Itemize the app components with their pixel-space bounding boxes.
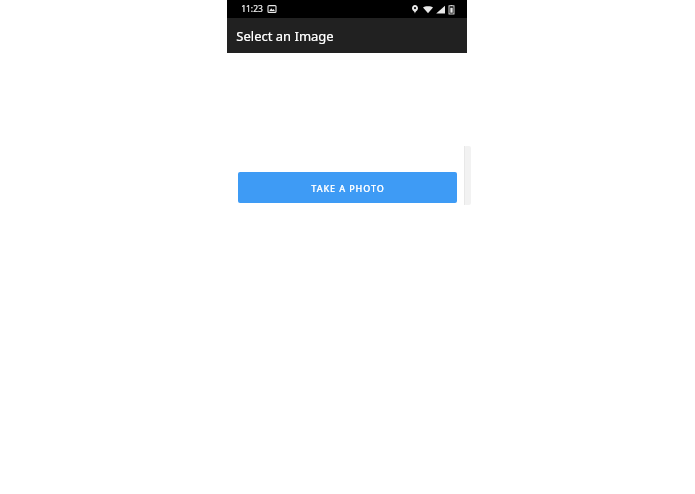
button[interactable]: TAKE A PHOTO xyxy=(238,172,457,203)
staticText: TAKE A PHOTO xyxy=(311,182,385,194)
staticText: 11:23 xyxy=(241,3,263,15)
staticText: Select an Image xyxy=(236,27,334,45)
